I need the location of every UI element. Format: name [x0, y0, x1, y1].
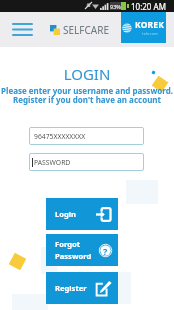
button[interactable]: PASSWORD: [29, 153, 144, 171]
staticText: PASSWORD: [34, 158, 71, 167]
staticText: 93%: [110, 3, 121, 10]
staticText: SELFCARE: [63, 23, 109, 37]
button[interactable]: Login: [46, 198, 118, 230]
button[interactable]: 96475XXXXXXXX: [29, 127, 144, 145]
button[interactable]: Forgot Password: [46, 234, 118, 266]
staticText: KOREK: [135, 19, 165, 31]
button[interactable]: Register: [46, 272, 118, 304]
staticText: Login: [55, 209, 96, 219]
staticText: LOGIN: [0, 64, 174, 84]
staticText: telecom: [142, 31, 158, 36]
staticText: ?: [103, 245, 108, 257]
staticText: Please enter your username and password.: [0, 85, 174, 96]
button[interactable]: Korek: [121, 12, 166, 43]
staticText: 10:20 AM: [131, 1, 166, 12]
staticText: Register: [55, 283, 96, 293]
staticText: Register if you don't have an account: [0, 94, 174, 105]
staticText: Forgot Password: [55, 239, 99, 261]
button[interactable]: Menu: [6, 12, 38, 47]
staticText: 96475XXXXXXXX: [34, 132, 86, 141]
